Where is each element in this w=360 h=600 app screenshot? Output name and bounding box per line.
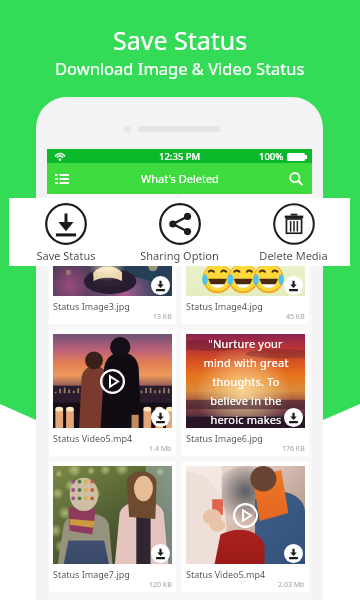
staticText: heroic makes xyxy=(210,412,282,427)
staticText: Status Video5.mp4 xyxy=(53,432,133,444)
staticText: Status Image3.jpg xyxy=(53,300,130,312)
button[interactable]: Download xyxy=(182,462,309,592)
button[interactable]: Download xyxy=(182,194,309,324)
staticText: What's Deleted xyxy=(141,171,219,186)
staticText: 2.03 Mb xyxy=(278,580,305,590)
button[interactable]: Search xyxy=(289,172,303,186)
staticText: 12:35 PM xyxy=(159,150,201,163)
button[interactable]: Download xyxy=(284,276,303,295)
staticText: Delete Media xyxy=(259,248,328,263)
button[interactable]: Sharing Option xyxy=(123,203,236,263)
button[interactable]: Download xyxy=(151,276,170,295)
staticText: Save Status xyxy=(113,23,248,57)
staticText: Status Image7.jpg xyxy=(53,568,130,580)
staticText: Download Image & Video Status xyxy=(55,57,305,79)
staticText: Status Image4.jpg xyxy=(186,300,263,312)
staticText: mind with great xyxy=(203,355,289,370)
staticText: Sharing Option xyxy=(140,248,219,263)
button[interactable]: Download xyxy=(284,408,303,427)
staticText: Status Video5.mp4 xyxy=(186,568,266,580)
button[interactable]: Save Status xyxy=(9,203,122,263)
staticText: 13 KB xyxy=(153,312,172,322)
button[interactable]: Delete Media xyxy=(237,203,350,263)
button[interactable]: Download xyxy=(151,544,170,563)
staticText: "Nurture your xyxy=(208,336,283,351)
button[interactable]: Download xyxy=(151,408,170,427)
staticText: 120 KB xyxy=(149,580,172,590)
button[interactable]: Menu xyxy=(55,172,69,186)
staticText: thoughts. To xyxy=(212,374,280,389)
button[interactable]: Download xyxy=(49,462,176,592)
staticText: 176 KB xyxy=(282,444,305,454)
staticText: 1.4 Mb xyxy=(149,444,172,454)
staticText: 100% xyxy=(259,150,284,163)
button[interactable]: Download xyxy=(49,194,176,324)
staticText: 45 KB xyxy=(286,312,305,322)
button[interactable]: Download xyxy=(49,330,176,456)
button[interactable]: "Nurture your xyxy=(182,330,309,456)
staticText: believe in the xyxy=(210,393,282,408)
button[interactable]: Download xyxy=(284,544,303,563)
staticText: Status Image6.jpg xyxy=(186,432,263,444)
staticText: Save Status xyxy=(36,248,96,263)
